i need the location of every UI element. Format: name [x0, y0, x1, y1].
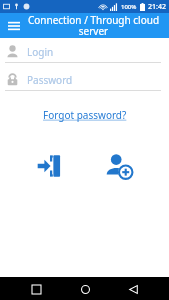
button[interactable]: Back — [123, 279, 143, 299]
button[interactable]: Open navigation menu — [4, 16, 24, 36]
button[interactable]: Recent apps — [26, 279, 46, 299]
button[interactable]: Password — [0, 72, 169, 91]
staticText: Connection / Through cloud server — [24, 13, 163, 38]
staticText: Password — [27, 73, 73, 87]
button[interactable]: Login — [0, 44, 169, 63]
button[interactable]: Home — [75, 279, 95, 299]
staticText: 100% — [121, 3, 137, 11]
button[interactable]: Register new account — [99, 146, 139, 186]
staticText: Forgot password? — [43, 108, 127, 122]
button[interactable]: Forgot password? — [39, 106, 131, 124]
staticText: Login — [27, 45, 54, 59]
button[interactable]: Log in — [30, 146, 70, 186]
staticText: 21:42 — [148, 2, 166, 12]
